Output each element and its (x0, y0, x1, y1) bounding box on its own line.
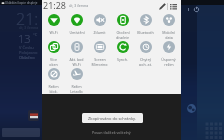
staticText: 13 (18, 31, 31, 46)
staticText: Wi-Fi (72, 62, 81, 66)
staticText: 21:28 (43, 0, 67, 11)
staticText: Umístění (69, 30, 85, 35)
staticText: Synch. (117, 57, 128, 62)
staticText: poh. at. (139, 62, 152, 66)
button[interactable]: Režim (42, 66, 65, 93)
staticText: Oblačno (19, 55, 35, 60)
button[interactable]: Synch. (111, 39, 134, 66)
staticText: °C (33, 32, 38, 37)
staticText: oken (49, 62, 58, 66)
button[interactable]: Settings (168, 1, 178, 11)
staticText: Režim (71, 84, 82, 89)
button[interactable]: Režim (65, 66, 88, 93)
staticText: Zkopírováno do schránky. (88, 116, 137, 121)
button[interactable]: Zkopírováno do schránky. (82, 113, 143, 123)
staticText: Ztlumit (93, 30, 106, 35)
button[interactable]: App (28, 110, 39, 121)
staticText: Screen (94, 57, 106, 62)
staticText: Otočení (116, 30, 130, 35)
button[interactable]: Ztlumit (88, 12, 111, 39)
staticText: data (165, 35, 173, 39)
button[interactable]: Více (42, 39, 65, 66)
staticText: Mobilní (162, 30, 175, 35)
button[interactable]: Mobilní (157, 12, 180, 39)
staticText: Akt. bod (69, 57, 84, 62)
staticText: Polojasno (19, 50, 38, 55)
staticText: Wi-Fi (49, 30, 58, 35)
staticText: Chytrý (140, 57, 151, 62)
staticText: Letadlo (70, 89, 83, 93)
button[interactable]: Bluetooth (134, 12, 157, 39)
staticText: Úsporný (161, 57, 176, 62)
button[interactable]: Chytrý (134, 39, 157, 66)
staticText: Ukládání kopie displeje (5, 1, 38, 5)
staticText: Režim (48, 84, 59, 89)
staticText: Více (50, 57, 57, 62)
button[interactable]: Wi-Fi (42, 12, 65, 39)
button[interactable]: Screen (88, 39, 111, 66)
staticText: displeje (116, 35, 129, 39)
staticText: blok. (49, 89, 58, 93)
staticText: režim (164, 62, 174, 66)
button[interactable]: Akt. bod (65, 39, 88, 66)
button[interactable]: Umístění (65, 12, 88, 39)
staticText: V Česku (19, 45, 34, 50)
staticText: út, 3 června (69, 3, 89, 8)
button[interactable]: Otočení (111, 12, 134, 39)
button[interactable]: Edit (157, 1, 167, 11)
staticText: Bluetooth (137, 30, 154, 35)
staticText: út, 3 června (19, 25, 39, 30)
staticText: Mirroring (91, 62, 108, 66)
staticText: Posun tlačítek volitelný (92, 130, 131, 135)
button[interactable]: Úsporný (157, 39, 180, 66)
staticText: 21: (16, 8, 39, 30)
